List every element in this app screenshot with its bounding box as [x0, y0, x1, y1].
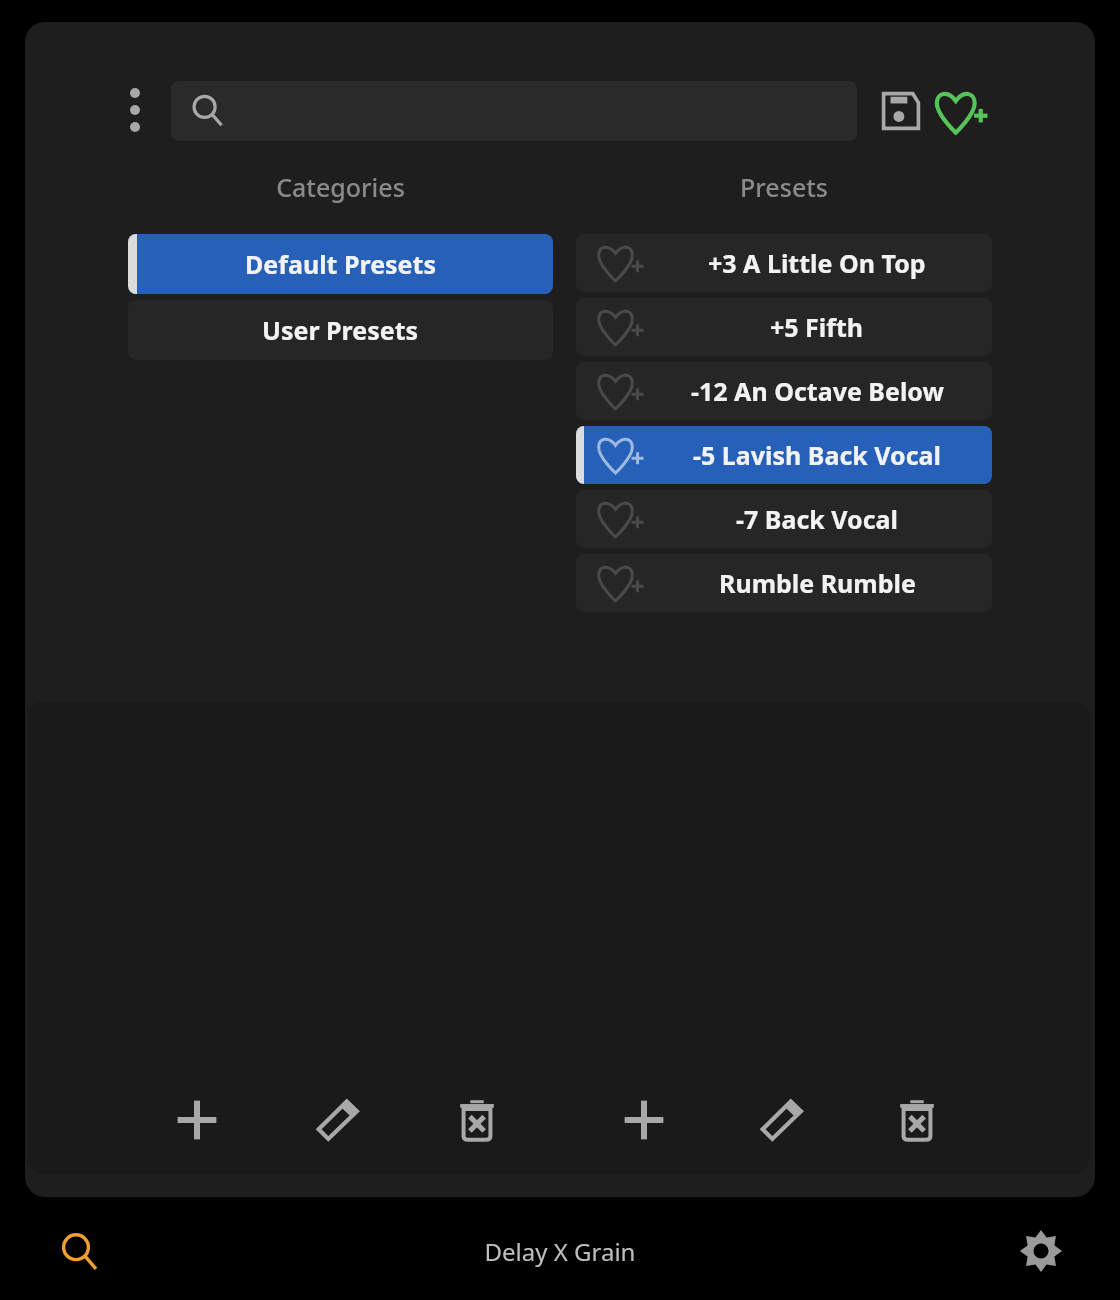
button[interactable]: -7 Back Vocal: [576, 490, 992, 548]
button[interactable]: Add to favourites: [932, 82, 992, 142]
button[interactable]: Default Presets: [128, 234, 553, 294]
button[interactable]: Add preset: [614, 1090, 674, 1150]
button[interactable]: +3 A Little On Top: [576, 234, 992, 292]
staticText: +5 Fifth: [770, 310, 864, 344]
button[interactable]: Delete preset: [887, 1090, 947, 1150]
button[interactable]: Settings: [1010, 1220, 1072, 1282]
button[interactable]: -12 An Octave Below: [576, 362, 992, 420]
button[interactable]: +5 Fifth: [576, 298, 992, 356]
button[interactable]: More options: [112, 78, 158, 142]
staticText: Rumble Rumble: [719, 566, 916, 600]
button[interactable]: Delete category: [447, 1090, 507, 1150]
button[interactable]: Rename preset: [752, 1090, 812, 1150]
button[interactable]: -5 Lavish Back Vocal: [576, 426, 992, 484]
button[interactable]: Search: [48, 1220, 112, 1284]
staticText: -12 An Octave Below: [691, 374, 944, 408]
staticText: User Presets: [262, 313, 419, 347]
button[interactable]: Rumble Rumble: [576, 554, 992, 612]
staticText: Categories: [128, 170, 553, 204]
staticText: Delay X Grain: [0, 1235, 1120, 1268]
staticText: Presets: [576, 170, 992, 204]
staticText: -7 Back Vocal: [736, 502, 899, 536]
button[interactable]: Add category: [167, 1090, 227, 1150]
staticText: Default Presets: [245, 247, 436, 281]
button[interactable]: Save: [872, 82, 930, 140]
button[interactable]: Search presets: [171, 81, 857, 141]
button[interactable]: User Presets: [128, 300, 553, 360]
staticText: -5 Lavish Back Vocal: [693, 438, 942, 472]
button[interactable]: Rename category: [308, 1090, 368, 1150]
staticText: +3 A Little On Top: [708, 246, 926, 280]
